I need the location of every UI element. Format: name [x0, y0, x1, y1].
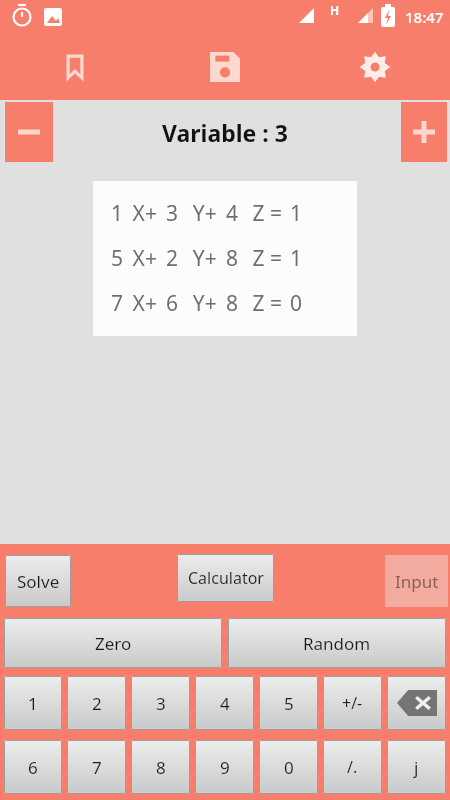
button[interactable]: 3 [131, 676, 190, 730]
button[interactable]: Increase variables [401, 102, 447, 162]
staticText: 3 [157, 199, 187, 228]
button[interactable]: Decrease variables [5, 102, 53, 162]
staticText: 1 [28, 692, 38, 715]
button[interactable]: Bookmark [0, 34, 150, 100]
button[interactable]: Random [228, 618, 446, 668]
button[interactable]: 2 [67, 676, 126, 730]
staticText: X+ [127, 244, 157, 273]
staticText: 1 [282, 244, 310, 273]
staticText: Z = [247, 289, 282, 318]
button[interactable]: Zero [4, 618, 222, 668]
staticText: Zero [95, 632, 132, 655]
staticText: Variable : 3 [162, 117, 288, 148]
staticText: Input [395, 570, 439, 593]
staticText: 1 [282, 199, 310, 228]
button[interactable]: j [387, 740, 446, 794]
staticText: 8 [217, 289, 247, 318]
button[interactable]: 8 [131, 740, 190, 794]
staticText: Y+ [187, 199, 217, 228]
staticText: +/- [342, 692, 363, 714]
button[interactable]: 5 [259, 676, 318, 730]
staticText: 18:47 [405, 7, 444, 27]
button[interactable]: Save [150, 34, 300, 100]
staticText: 0 [282, 289, 310, 318]
button[interactable]: Input [385, 555, 448, 607]
staticText: Random [303, 632, 371, 655]
staticText: /. [347, 756, 358, 778]
staticText: 3 [156, 692, 166, 715]
button[interactable]: 0 [259, 740, 318, 794]
button[interactable]: 1 [4, 676, 62, 730]
button[interactable]: 9 [195, 740, 254, 794]
button[interactable]: Calculator [177, 554, 274, 602]
staticText: H [330, 2, 340, 18]
staticText: Z = [247, 199, 282, 228]
staticText: 7 [107, 289, 127, 318]
staticText: 5 [107, 244, 127, 273]
staticText: Y+ [187, 244, 217, 273]
staticText: 5 [284, 692, 294, 715]
staticText: 6 [28, 756, 38, 779]
staticText: 1 [107, 199, 127, 228]
staticText: X+ [127, 199, 157, 228]
button[interactable]: +/- [323, 676, 382, 730]
staticText: Z = [247, 244, 282, 273]
staticText: X+ [127, 289, 157, 318]
staticText: Y+ [187, 289, 217, 318]
staticText: 4 [217, 199, 247, 228]
staticText: 4 [220, 692, 230, 715]
button[interactable]: /. [323, 740, 382, 794]
staticText: 8 [217, 244, 247, 273]
staticText: 7 [92, 756, 102, 779]
staticText: 2 [92, 692, 102, 715]
staticText: Solve [17, 570, 60, 593]
button[interactable]: Solve [5, 555, 71, 607]
button[interactable]: 7 [67, 740, 126, 794]
button[interactable]: Backspace [387, 676, 446, 730]
button[interactable]: 4 [195, 676, 254, 730]
staticText: 9 [220, 756, 230, 779]
staticText: Calculator [188, 567, 264, 589]
button[interactable]: Settings [300, 34, 450, 100]
staticText: 0 [284, 756, 294, 779]
staticText: 8 [156, 756, 166, 779]
staticText: 6 [157, 289, 187, 318]
staticText: 2 [157, 244, 187, 273]
staticText: j [414, 756, 419, 779]
button[interactable]: 6 [4, 740, 62, 794]
